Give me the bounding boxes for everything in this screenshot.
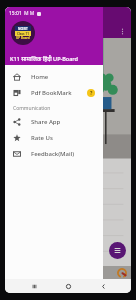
button[interactable]: Home (62, 280, 74, 292)
staticText: M M (24, 10, 35, 17)
staticText: Communication (13, 105, 51, 112)
button[interactable]: Rate Us (5, 130, 103, 146)
staticText: UP Board (16, 36, 30, 40)
button[interactable]: Compose (109, 242, 126, 259)
staticText: Home (31, 73, 49, 81)
button[interactable]: Home (5, 69, 103, 85)
staticText: Class 11 (17, 32, 29, 36)
staticText: 15:01 (9, 10, 22, 17)
staticText: Pdf BookMark (31, 89, 72, 97)
button[interactable]: Back (97, 280, 109, 292)
staticText: Rate Us (31, 134, 53, 142)
staticText: ? (90, 90, 93, 97)
button[interactable]: Pdf BookMark (5, 85, 103, 101)
button[interactable]: More options (117, 26, 127, 36)
staticText: Share App (31, 118, 61, 126)
button[interactable]: Feedback(Mail) (5, 146, 103, 162)
button[interactable]: Share App (5, 114, 103, 130)
staticText: Feedback(Mail) (31, 150, 75, 158)
button[interactable]: Recents (28, 280, 40, 292)
staticText: NCERT (18, 27, 28, 31)
staticText: K11 सामाजिक हिंदी UP-Board (10, 55, 78, 62)
